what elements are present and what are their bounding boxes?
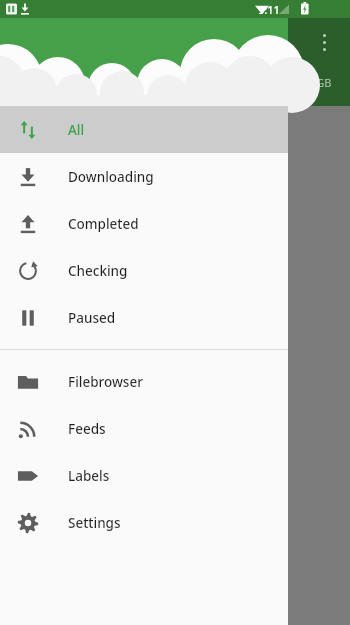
button[interactable]: Labels [0, 452, 288, 499]
staticText: Feeds [68, 420, 106, 438]
button[interactable]: Filebrowser [0, 358, 288, 405]
button[interactable]: All [0, 106, 288, 153]
staticText: Settings [68, 514, 121, 532]
staticText: Checking [68, 262, 128, 280]
staticText: · 6.2 GB [292, 75, 332, 90]
button[interactable]: Checking [0, 247, 288, 294]
button[interactable]: Completed [0, 200, 288, 247]
button[interactable]: Downloading [0, 153, 288, 200]
button[interactable]: Settings [0, 499, 288, 546]
staticText: Completed [68, 215, 139, 233]
button[interactable]: Paused [0, 294, 288, 341]
button[interactable]: More options [316, 34, 332, 56]
staticText: Downloading [68, 168, 154, 186]
staticText: 9:11 [258, 2, 280, 17]
staticText: Labels [68, 467, 110, 485]
staticText: All [68, 121, 85, 139]
staticText: Paused [68, 309, 116, 327]
button[interactable]: Feeds [0, 405, 288, 452]
staticText: Filebrowser [68, 373, 143, 391]
